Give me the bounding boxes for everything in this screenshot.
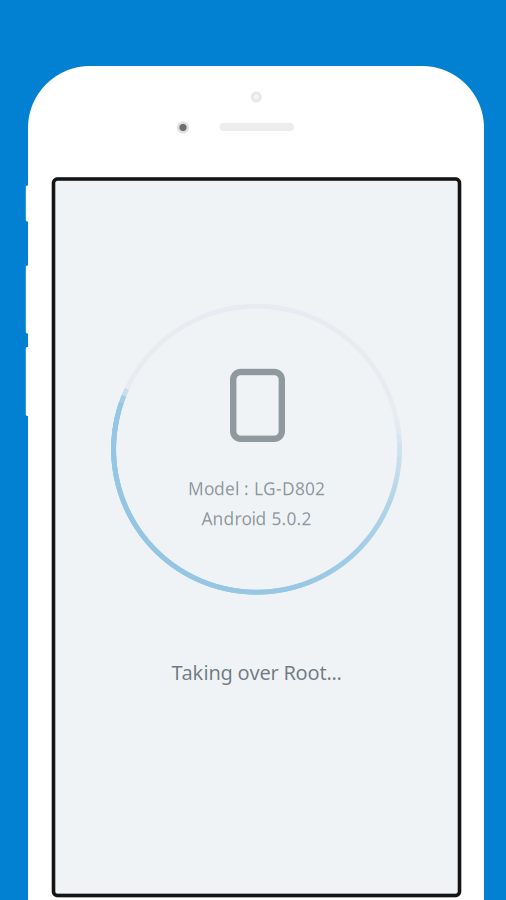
staticText: Android 5.0.2 [201, 507, 311, 530]
staticText: Taking over Root... [171, 659, 341, 686]
staticText: Model : LG-D802 [188, 477, 325, 500]
